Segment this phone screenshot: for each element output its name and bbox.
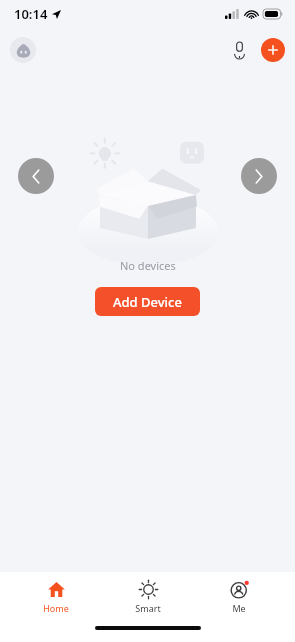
button[interactable]: Smart (113, 576, 183, 617)
button[interactable]: Add (261, 38, 285, 62)
button[interactable]: Next (241, 158, 277, 194)
button[interactable]: Voice (225, 36, 253, 64)
staticText: Me (232, 602, 246, 614)
button[interactable]: Profile (10, 37, 36, 63)
staticText: Add Device (113, 293, 182, 311)
staticText: Home (43, 602, 69, 614)
button[interactable]: Previous (18, 158, 54, 194)
staticText: 10:14 (14, 5, 48, 23)
button[interactable]: Me (204, 576, 274, 617)
staticText: No devices (120, 258, 176, 273)
staticText: Smart (135, 602, 161, 614)
button[interactable]: Add Device (95, 287, 200, 316)
button[interactable]: Home (21, 576, 91, 617)
